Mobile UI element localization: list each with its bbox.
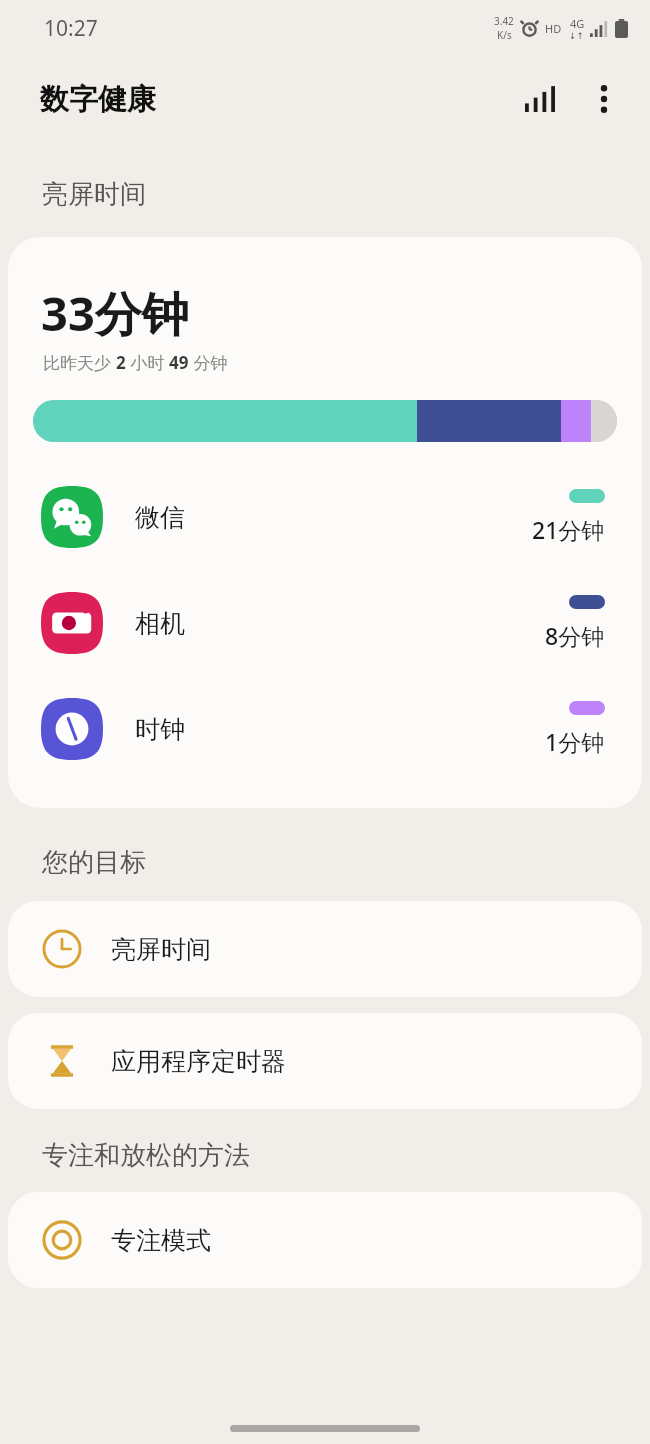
staticText: 微信 xyxy=(135,502,185,533)
staticText: 4G xyxy=(570,16,585,31)
button[interactable]: 亮屏时间 xyxy=(8,901,642,997)
staticText: 亮屏时间 xyxy=(42,178,146,211)
staticText: 1分钟 xyxy=(545,726,605,757)
staticText: 您的目标 xyxy=(42,846,146,879)
staticText: 比昨天少 xyxy=(43,351,116,374)
staticText: 33分钟 xyxy=(41,281,189,345)
staticText: K/s xyxy=(497,28,512,42)
staticText: 2 xyxy=(116,351,126,374)
staticText: 分钟 xyxy=(189,351,228,374)
staticText: 21分钟 xyxy=(532,514,605,545)
button[interactable]: Weekly statistics xyxy=(516,75,564,123)
staticText: 相机 xyxy=(135,608,185,639)
staticText: 49 xyxy=(169,351,189,374)
staticText: 3.42 xyxy=(494,14,514,28)
staticText: 专注和放松的方法 xyxy=(42,1139,250,1172)
staticText: 10:27 xyxy=(44,14,98,43)
staticText: 应用程序定时器 xyxy=(111,1046,286,1077)
button[interactable]: 微信 xyxy=(8,464,642,570)
staticText: 8分钟 xyxy=(545,620,605,651)
staticText: ↓↑ xyxy=(569,31,585,41)
staticText: 亮屏时间 xyxy=(111,934,211,965)
button[interactable]: 应用程序定时器 xyxy=(8,1013,642,1109)
button[interactable]: 33分钟 xyxy=(8,237,642,808)
button[interactable]: 相机 xyxy=(8,570,642,676)
staticText: 专注模式 xyxy=(111,1225,211,1256)
staticText: 时钟 xyxy=(135,714,185,745)
staticText: 小时 xyxy=(126,351,169,374)
button[interactable]: More options xyxy=(580,75,628,123)
staticText: 数字健康 xyxy=(40,81,156,118)
button[interactable]: 专注模式 xyxy=(8,1192,642,1288)
staticText: HD xyxy=(545,21,562,36)
button[interactable]: 时钟 xyxy=(8,676,642,782)
